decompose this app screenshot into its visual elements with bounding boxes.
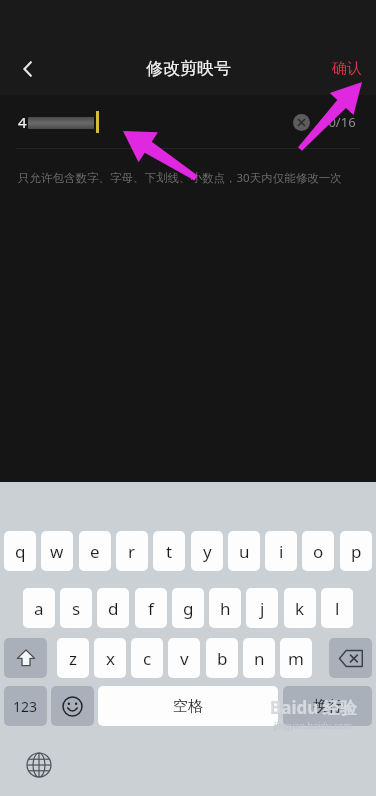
button[interactable]: Switch language [18, 744, 60, 786]
staticText: 修改剪映号 [146, 58, 231, 79]
button[interactable]: k [284, 588, 316, 628]
button[interactable]: a [23, 588, 55, 628]
button[interactable]: l [321, 588, 353, 628]
button[interactable]: Shift [4, 638, 47, 678]
staticText: a [34, 597, 44, 620]
button[interactable]: v [168, 638, 200, 678]
button[interactable]: s [60, 588, 92, 628]
button[interactable]: u [228, 531, 260, 571]
button[interactable]: t [153, 531, 185, 571]
button[interactable]: 换行 [283, 686, 372, 726]
button[interactable]: g [172, 588, 204, 628]
staticText: p [351, 540, 362, 563]
button[interactable]: n [243, 638, 275, 678]
staticText: j [260, 597, 265, 620]
button[interactable]: 空格 [98, 686, 278, 726]
staticText: d [108, 597, 119, 620]
button[interactable]: c [131, 638, 163, 678]
staticText: u [239, 540, 250, 563]
staticText: q [15, 540, 26, 563]
button[interactable]: y [191, 531, 223, 571]
button[interactable]: m [280, 638, 312, 678]
button[interactable]: 确认 [318, 49, 376, 88]
button[interactable]: j [246, 588, 278, 628]
staticText: x [106, 647, 115, 670]
staticText: 空格 [173, 697, 203, 716]
button[interactable]: x [94, 638, 126, 678]
staticText: 确认 [332, 59, 362, 78]
button[interactable]: o [302, 531, 334, 571]
staticText: n [254, 647, 265, 670]
button[interactable]: w [41, 531, 73, 571]
staticText: Baidu 经验 [270, 696, 357, 719]
staticText: 10/16 [321, 113, 356, 131]
staticText: jingyan.baidu.com [274, 719, 352, 731]
staticText: 只允许包含数字、字母、下划线、小数点，30天内仅能修改一次 [18, 170, 342, 186]
button[interactable]: r [116, 531, 148, 571]
button[interactable]: f [135, 588, 167, 628]
button[interactable]: e [79, 531, 111, 571]
button[interactable]: Clear text [287, 108, 315, 136]
staticText: m [288, 647, 304, 670]
staticText: y [203, 540, 212, 563]
staticText: k [295, 597, 305, 620]
staticText: h [220, 597, 231, 620]
staticText: w [50, 540, 64, 563]
button[interactable]: 4 [18, 111, 99, 133]
button[interactable]: Back [8, 49, 48, 89]
staticText: o [313, 540, 324, 563]
staticText: 123 [13, 697, 38, 716]
staticText: z [69, 647, 77, 670]
staticText: v [180, 647, 189, 670]
staticText: f [148, 597, 154, 620]
button[interactable]: p [340, 531, 372, 571]
staticText: b [217, 647, 228, 670]
button[interactable]: Backspace [329, 638, 372, 678]
button[interactable]: h [209, 588, 241, 628]
button[interactable]: q [4, 531, 36, 571]
staticText: s [72, 597, 81, 620]
button[interactable]: i [265, 531, 297, 571]
staticText: 换行 [313, 697, 343, 716]
staticText: l [335, 597, 340, 620]
button[interactable]: d [97, 588, 129, 628]
button[interactable]: b [206, 638, 238, 678]
staticText: t [166, 540, 173, 563]
staticText: r [128, 540, 136, 563]
staticText: i [279, 540, 284, 563]
button[interactable]: Emoji [51, 686, 94, 726]
staticText: c [143, 647, 152, 670]
staticText: e [90, 540, 100, 563]
staticText: 4 [18, 112, 27, 132]
button[interactable]: z [57, 638, 89, 678]
button[interactable]: 123 [4, 686, 47, 726]
staticText: g [183, 597, 194, 620]
